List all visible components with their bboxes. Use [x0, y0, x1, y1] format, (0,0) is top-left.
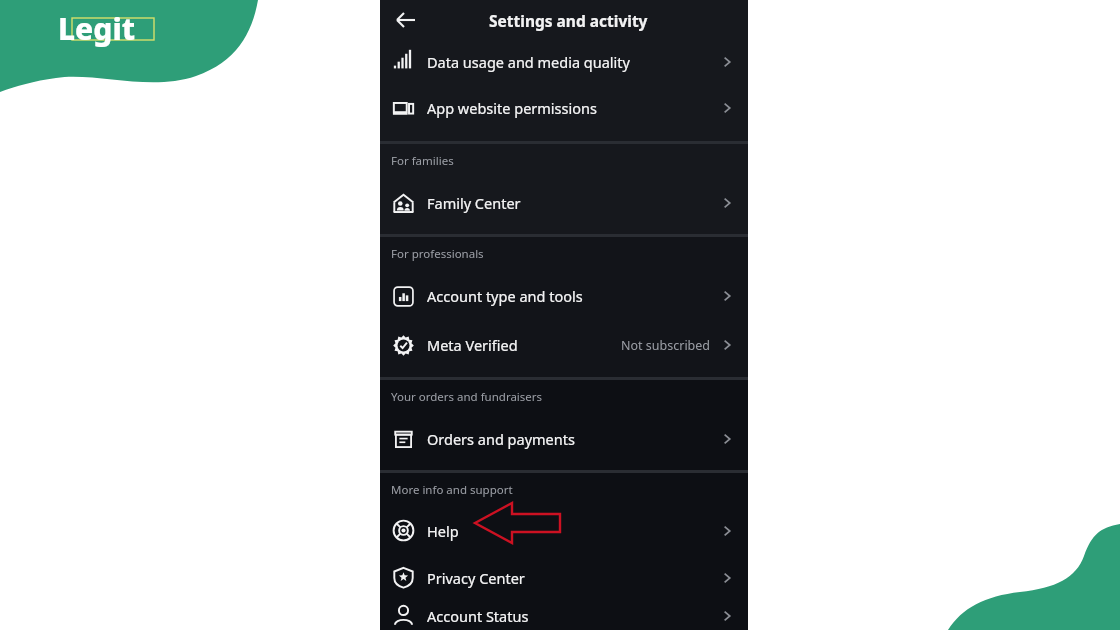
button[interactable]: Back: [386, 0, 426, 40]
button[interactable]: Meta Verified: [380, 321, 748, 369]
button[interactable]: Help: [380, 507, 748, 554]
staticText: More info and support: [391, 482, 513, 498]
button[interactable]: Account Status: [380, 601, 748, 630]
button[interactable]: Privacy Center: [380, 554, 748, 601]
other: Legit logo: [72, 12, 154, 53]
staticText: Orders and payments: [427, 429, 575, 449]
staticText: Settings and activity: [489, 10, 648, 31]
staticText: Not subscribed: [621, 337, 711, 354]
staticText: Privacy Center: [427, 568, 525, 588]
button[interactable]: App website permissions: [380, 83, 748, 133]
staticText: Family Center: [427, 193, 521, 213]
staticText: Your orders and fundraisers: [391, 389, 543, 405]
staticText: App website permissions: [427, 98, 597, 118]
button[interactable]: Account type and tools: [380, 271, 748, 321]
button[interactable]: Orders and payments: [380, 414, 748, 464]
staticText: Account Status: [427, 606, 529, 626]
staticText: Data usage and media quality: [427, 52, 630, 72]
staticText: Help: [427, 521, 459, 541]
staticText: Account type and tools: [427, 286, 583, 306]
staticText: For professionals: [391, 246, 484, 262]
button[interactable]: Family Center: [380, 178, 748, 228]
staticText: Legit: [58, 8, 136, 49]
staticText: For families: [391, 153, 454, 169]
staticText: Meta Verified: [427, 335, 518, 355]
button[interactable]: Data usage and media quality: [380, 40, 748, 83]
